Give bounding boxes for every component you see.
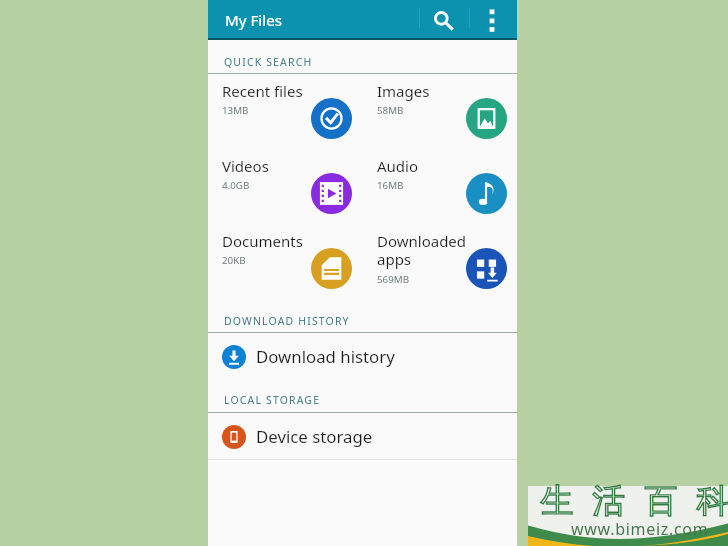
button[interactable]: Download history — [208, 333, 517, 378]
staticText: LOCAL STORAGE — [224, 393, 321, 407]
staticText: DOWNLOAD HISTORY — [224, 314, 350, 328]
button[interactable]: Search — [419, 0, 463, 40]
button[interactable]: Audio — [363, 148, 518, 223]
staticText: Audio — [377, 156, 419, 176]
staticText: 4.0GB — [222, 179, 250, 192]
staticText: Images — [377, 81, 430, 101]
button[interactable]: Device storage — [208, 413, 517, 460]
button[interactable]: More options — [472, 0, 512, 40]
button[interactable]: Images — [363, 73, 518, 148]
staticText: www.bimeiz.com — [571, 518, 709, 540]
button[interactable]: Downloaded apps — [363, 223, 518, 298]
staticText: My Files — [225, 10, 283, 31]
staticText: QUICK SEARCH — [224, 55, 313, 69]
staticText: 569MB — [377, 273, 410, 286]
staticText: Recent files — [222, 81, 303, 101]
button[interactable]: Documents — [208, 223, 363, 298]
staticText: 生活百科 — [531, 480, 728, 522]
staticText: Videos — [222, 156, 269, 176]
staticText: Download history — [256, 345, 395, 368]
staticText: Downloaded apps — [377, 231, 473, 270]
button[interactable]: Videos — [208, 148, 363, 223]
staticText: 16MB — [377, 179, 404, 192]
staticText: Documents — [222, 231, 303, 251]
staticText: Device storage — [256, 425, 373, 448]
staticText: 58MB — [377, 104, 404, 117]
staticText: 13MB — [222, 104, 249, 117]
staticText: 20KB — [222, 254, 246, 267]
button[interactable]: Recent files — [208, 73, 363, 148]
